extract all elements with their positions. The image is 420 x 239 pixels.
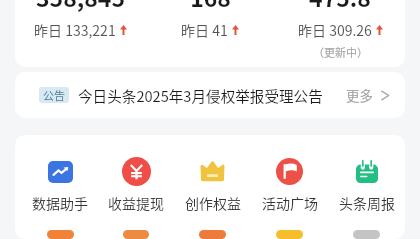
- staticText: 168: [190, 0, 231, 13]
- staticText: 昨日 309.26: [298, 20, 372, 40]
- button[interactable]: 更多功能: [328, 230, 405, 239]
- staticText: 358,845: [36, 0, 125, 13]
- staticText: 头条周报: [339, 193, 395, 213]
- staticText: 收益提现: [108, 193, 164, 213]
- staticText: 昨日 133,221: [34, 20, 116, 40]
- button[interactable]: 粉丝管理: [98, 230, 174, 239]
- staticText: 活动广场: [262, 193, 318, 213]
- staticText: 昨日 41: [181, 20, 228, 40]
- staticText: 公告: [43, 87, 65, 103]
- button[interactable]: 收益提现: [98, 157, 174, 213]
- staticText: 475.8: [309, 0, 371, 13]
- staticText: 更多: [346, 85, 373, 105]
- staticText: 数据助手: [32, 193, 88, 213]
- button[interactable]: 活动广场: [251, 157, 328, 213]
- staticText: （更新中）: [313, 44, 368, 58]
- button[interactable]: 头条周报: [328, 157, 405, 213]
- staticText: 创作权益: [185, 193, 241, 213]
- button[interactable]: 数据助手: [22, 157, 98, 213]
- button[interactable]: 创作学院: [22, 230, 98, 239]
- button[interactable]: 小店中心: [174, 230, 251, 239]
- button[interactable]: 创作权益: [174, 157, 251, 213]
- staticText: 今日头条2025年3月侵权举报受理公告: [78, 85, 323, 106]
- button[interactable]: 公告: [15, 72, 405, 118]
- button[interactable]: 创作任务: [251, 230, 328, 239]
